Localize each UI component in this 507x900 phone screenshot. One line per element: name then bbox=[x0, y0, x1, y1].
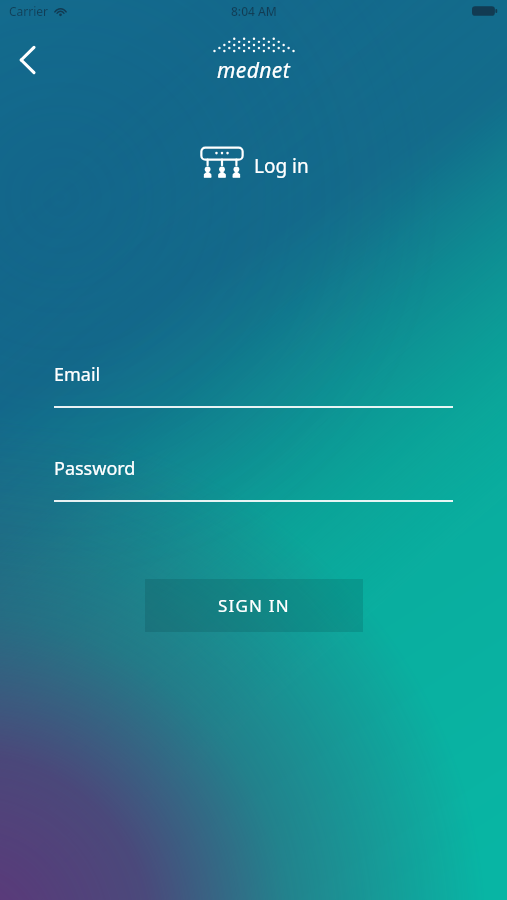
staticText: SIGN IN bbox=[218, 594, 290, 617]
staticText: Password bbox=[54, 456, 136, 481]
staticText: 8:04 AM bbox=[231, 3, 277, 19]
button[interactable]: Password bbox=[54, 456, 453, 502]
button[interactable]: Email bbox=[54, 362, 453, 408]
button[interactable]: Back bbox=[6, 38, 50, 82]
button[interactable]: SIGN IN bbox=[145, 579, 363, 632]
staticText: Email bbox=[54, 362, 101, 387]
staticText: Log in bbox=[254, 153, 309, 179]
staticText: Carrier bbox=[9, 3, 49, 19]
staticText: mednet bbox=[217, 56, 291, 85]
